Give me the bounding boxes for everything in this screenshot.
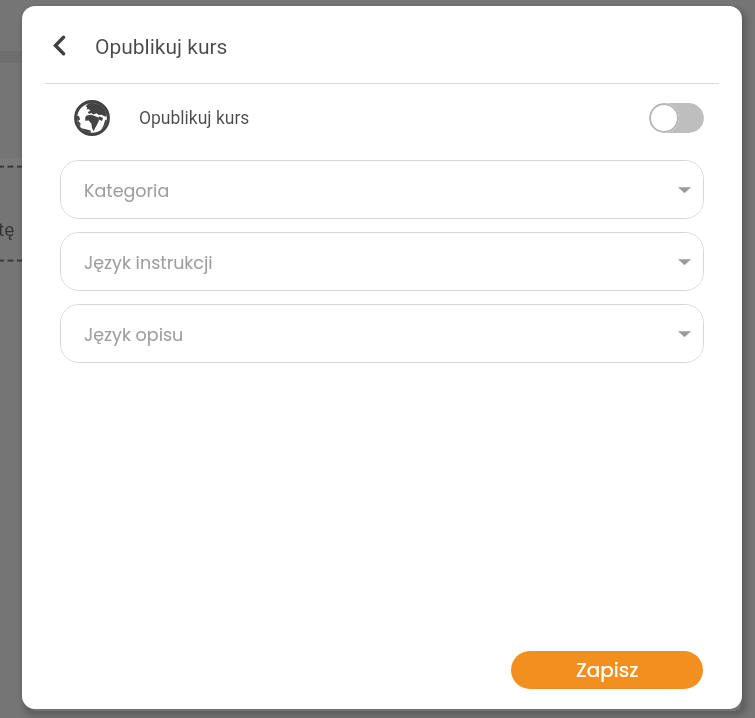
staticText: Język instrukcji	[84, 251, 213, 276]
button[interactable]: Język instrukcji	[60, 232, 704, 291]
button[interactable]: Zapisz	[511, 651, 703, 689]
staticText: Opublikuj kurs	[95, 35, 228, 60]
staticText: Opublikuj kurs	[139, 108, 250, 129]
staticText: tę	[0, 218, 15, 240]
button[interactable]: Kategoria	[60, 160, 704, 219]
staticText: Zapisz	[576, 656, 639, 684]
button[interactable]: Back	[36, 22, 82, 68]
button[interactable]: Opublikuj kurs, wyłączone	[649, 103, 704, 133]
button[interactable]: Język opisu	[60, 304, 704, 363]
staticText: Kategoria	[84, 179, 170, 204]
staticText: Język opisu	[84, 323, 184, 348]
button[interactable]: Opublikuj kurs	[22, 89, 742, 147]
